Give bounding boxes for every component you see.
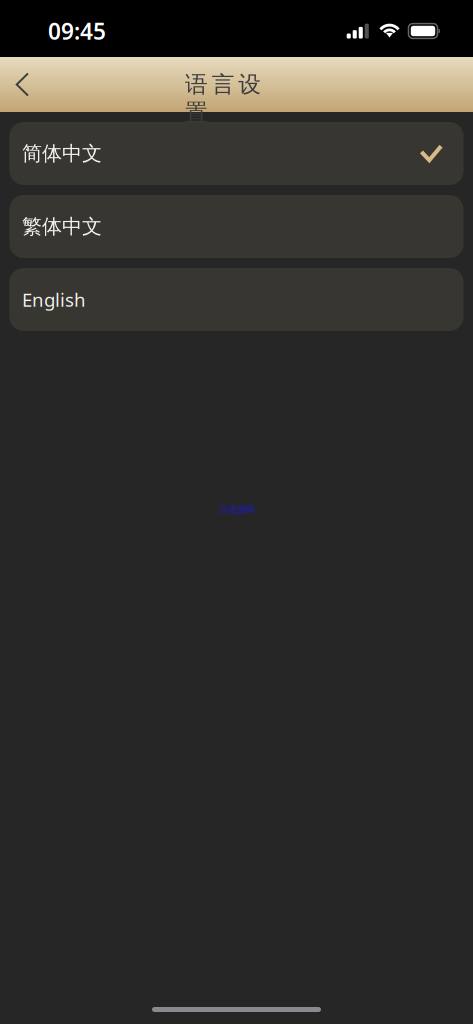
button[interactable]: 繁体中文	[9, 195, 463, 258]
staticText: 语言设置	[185, 71, 288, 98]
staticText: 09:45	[48, 16, 106, 46]
button[interactable]: Back	[0, 61, 44, 107]
button[interactable]: English	[9, 268, 463, 331]
staticText: English	[22, 287, 86, 312]
staticText: 简体中文	[22, 141, 102, 166]
staticText: 汉语源码	[218, 504, 254, 515]
button[interactable]: 简体中文	[9, 122, 463, 185]
staticText: 繁体中文	[22, 214, 102, 239]
